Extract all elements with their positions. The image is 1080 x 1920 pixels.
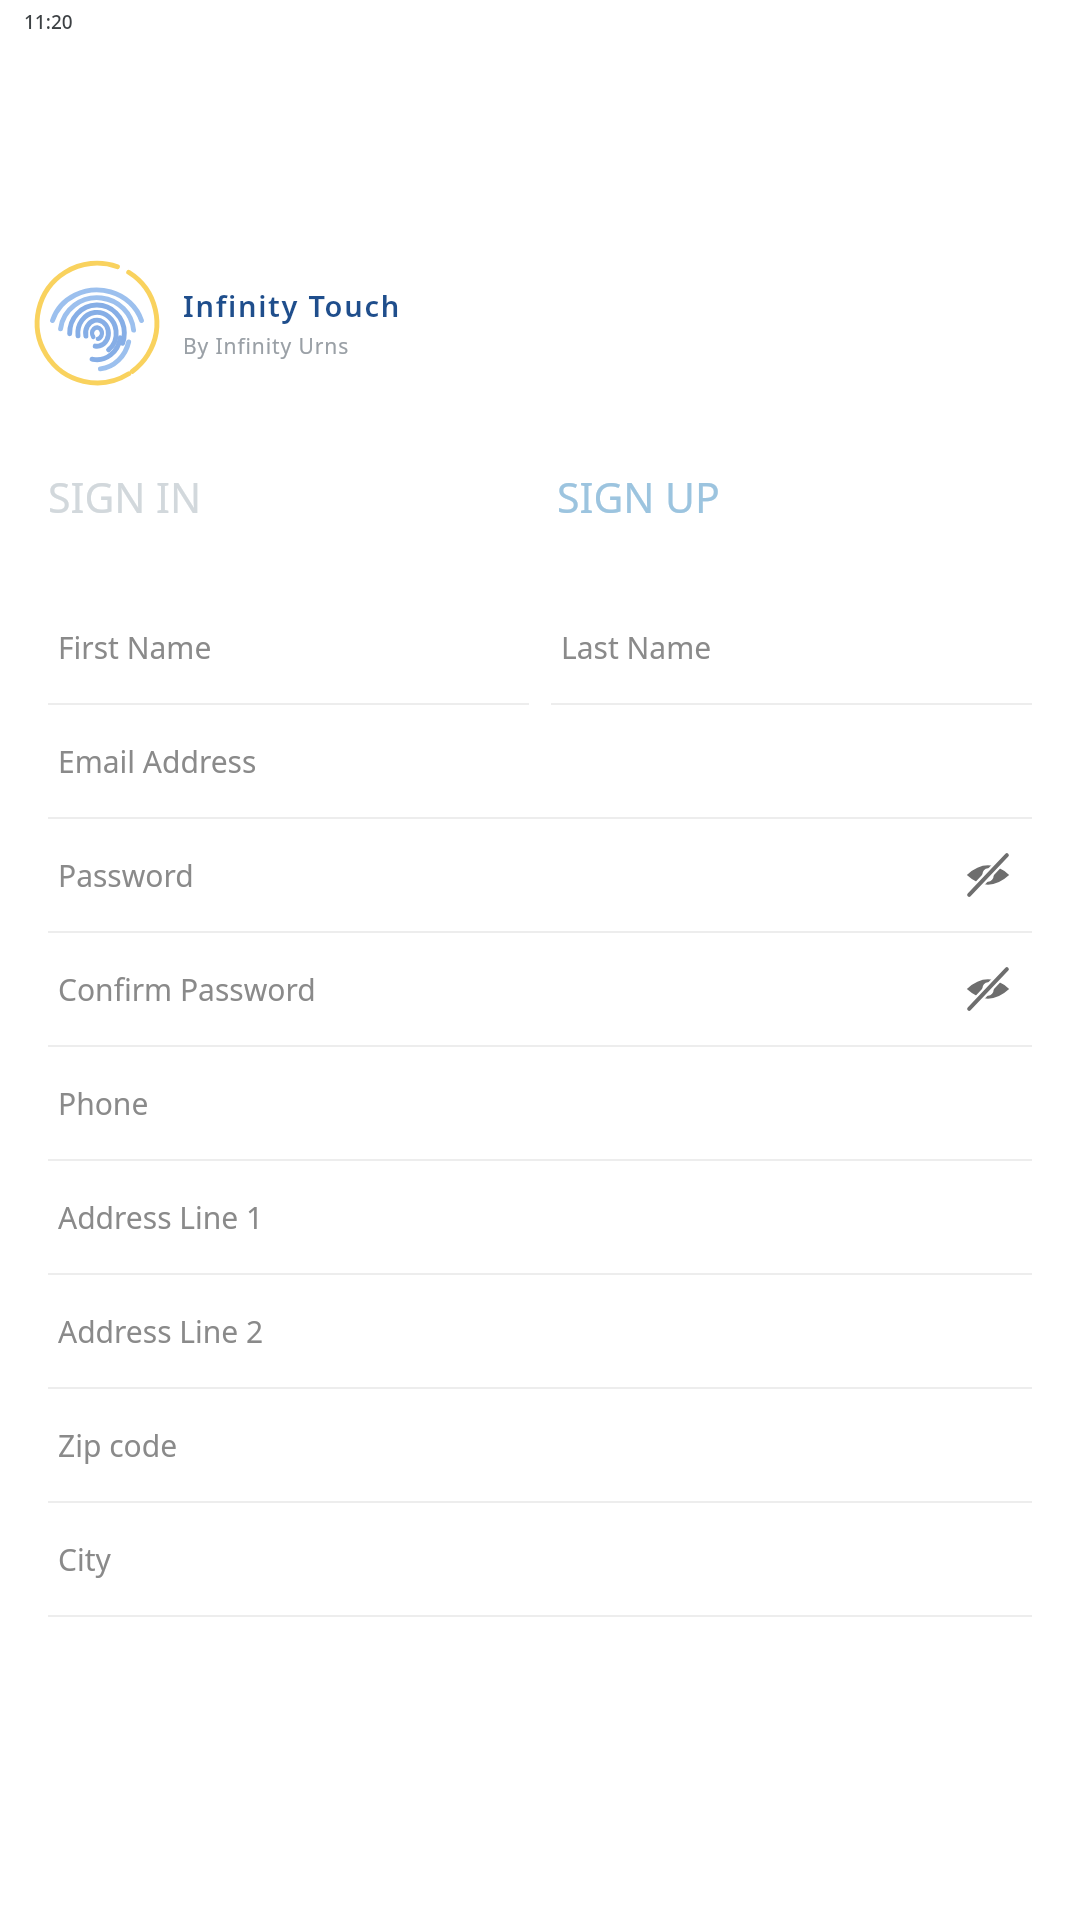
button[interactable]: Email Address xyxy=(48,705,1032,819)
staticText: SIGN IN xyxy=(48,469,202,525)
button[interactable]: Last Name xyxy=(551,591,1032,705)
staticText: Email Address xyxy=(58,741,257,782)
button[interactable]: Address Line 1 xyxy=(48,1161,1032,1275)
button[interactable]: SIGN UP xyxy=(540,453,1080,541)
button[interactable]: Show password xyxy=(944,831,1032,919)
button[interactable]: Password xyxy=(48,819,1032,933)
staticText: Zip code xyxy=(58,1425,178,1466)
staticText: Password xyxy=(58,855,194,896)
button[interactable]: Phone xyxy=(48,1047,1032,1161)
staticText: Address Line 2 xyxy=(58,1311,264,1352)
button[interactable]: SIGN IN xyxy=(0,453,540,541)
staticText: Confirm Password xyxy=(58,969,316,1010)
button[interactable]: First Name xyxy=(48,591,529,705)
button[interactable]: Confirm Password xyxy=(48,933,1032,1047)
button[interactable]: Address Line 2 xyxy=(48,1275,1032,1389)
staticText: Phone xyxy=(58,1083,149,1124)
staticText: SIGN UP xyxy=(557,469,720,525)
staticText: Infinity Touch xyxy=(183,286,401,325)
staticText: By Infinity Urns xyxy=(183,332,350,361)
staticText: Address Line 1 xyxy=(58,1197,264,1238)
staticText: Last Name xyxy=(561,627,712,668)
button[interactable]: Show password xyxy=(944,945,1032,1033)
staticText: City xyxy=(58,1539,111,1580)
staticText: 11:20 xyxy=(24,9,73,35)
button[interactable]: Zip code xyxy=(48,1389,1032,1503)
button[interactable]: City xyxy=(48,1503,1032,1617)
staticText: First Name xyxy=(58,627,212,668)
